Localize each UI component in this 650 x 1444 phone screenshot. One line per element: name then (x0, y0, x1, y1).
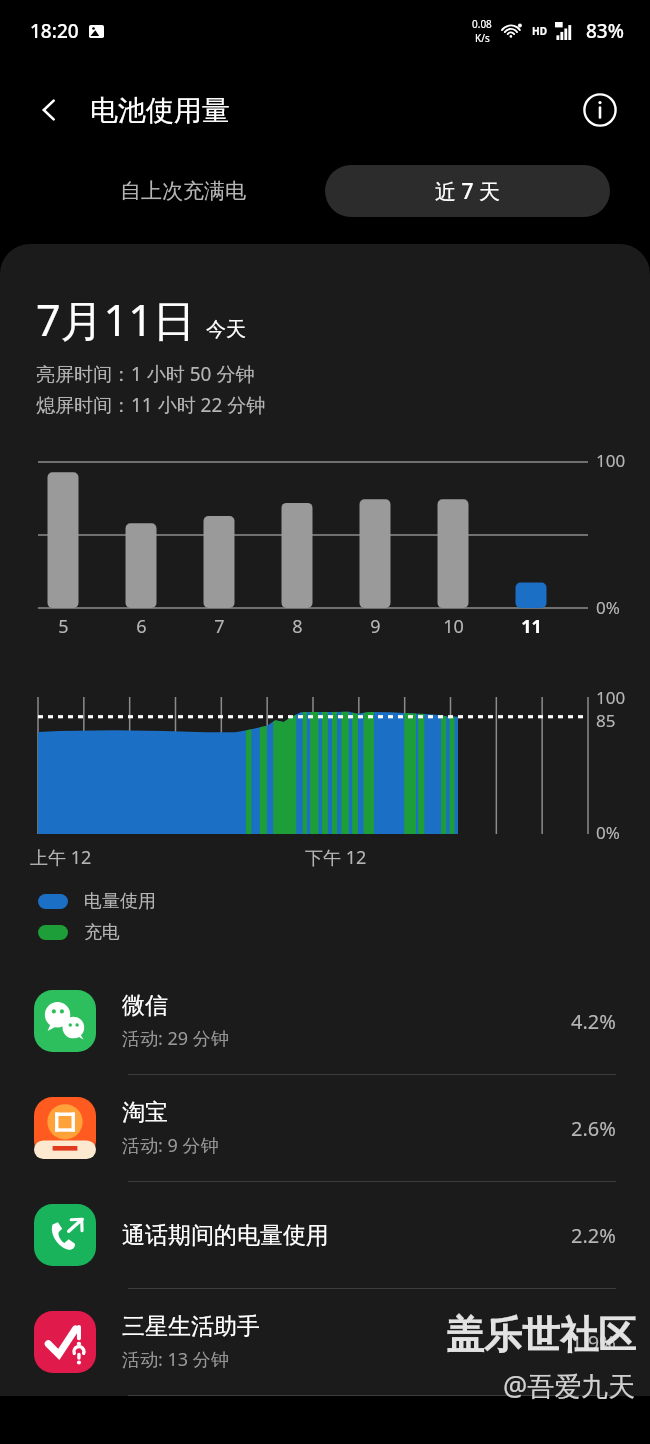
button[interactable]: 近 7 天 (325, 165, 610, 217)
staticText: 11 (521, 614, 542, 639)
staticText: 1.9% (571, 1329, 616, 1356)
staticText: 淘宝 (122, 1098, 168, 1127)
staticText: 9 (370, 614, 381, 639)
staticText: 电池使用量 (90, 93, 230, 128)
staticText: 近 7 天 (435, 177, 500, 206)
button[interactable]: Information (572, 82, 628, 138)
staticText: 上午 12 (30, 845, 92, 870)
staticText: 自上次充满电 (120, 178, 246, 204)
staticText: 今天 (206, 317, 246, 342)
staticText: 2.2% (571, 1222, 616, 1249)
staticText: 0% (596, 596, 620, 619)
staticText: 2.6% (571, 1115, 616, 1142)
staticText: 6 (136, 614, 147, 639)
button[interactable]: 三星生活助手 (0, 1289, 650, 1395)
staticText: 18:20 (30, 18, 79, 44)
button[interactable]: 微信 (0, 968, 650, 1074)
staticText: 7月11日 (36, 290, 196, 349)
staticText: 活动: 13 分钟 (122, 1347, 229, 1372)
staticText: 85 (596, 709, 616, 732)
staticText: 100 (596, 449, 626, 472)
staticText: 5 (58, 614, 69, 639)
staticText: 亮屏时间：1 小时 50 分钟 (36, 361, 255, 387)
staticText: 下午 12 (305, 845, 367, 870)
staticText: 100 (596, 686, 626, 709)
staticText: 盖乐世社区 (446, 1311, 636, 1359)
staticText: 83% (586, 18, 624, 44)
staticText: @吾爱九天 (503, 1367, 636, 1404)
staticText: 8 (292, 614, 303, 639)
staticText: 三星生活助手 (122, 1312, 260, 1341)
staticText: 0% (596, 821, 620, 844)
staticText: 微信 (122, 991, 168, 1020)
staticText: 活动: 9 分钟 (122, 1133, 219, 1158)
staticText: 活动: 29 分钟 (122, 1026, 229, 1051)
staticText: 电量使用 (84, 890, 156, 913)
button[interactable]: Back (20, 81, 78, 139)
staticText: 4.2% (571, 1008, 616, 1035)
staticText: 0.08 (472, 17, 492, 31)
staticText: 通话期间的电量使用 (122, 1221, 329, 1250)
staticText: K/s (475, 31, 490, 45)
staticText: 熄屏时间：11 小时 22 分钟 (36, 392, 266, 418)
staticText: 7 (214, 614, 225, 639)
button[interactable]: 通话期间的电量使用 (0, 1182, 650, 1288)
staticText: 充电 (84, 921, 120, 944)
button[interactable]: 自上次充满电 (40, 158, 325, 224)
staticText: HD (532, 24, 547, 38)
staticText: 10 (443, 614, 464, 639)
button[interactable]: 淘宝 (0, 1075, 650, 1181)
